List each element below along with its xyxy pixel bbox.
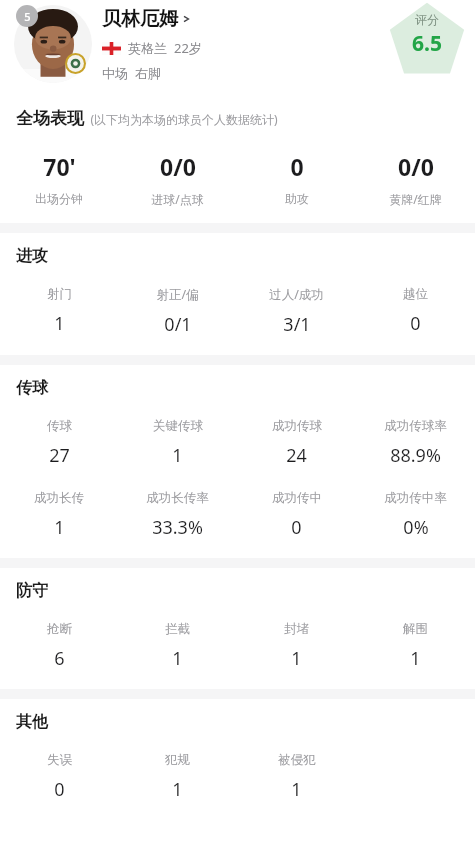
staticText: 0% bbox=[403, 515, 429, 540]
staticText: 6 bbox=[54, 646, 65, 671]
button[interactable]: 评分 6.5 bbox=[395, 9, 459, 71]
button[interactable]: 失误 bbox=[0, 752, 118, 802]
staticText: 22岁 bbox=[174, 39, 202, 57]
staticText: 0 bbox=[291, 515, 302, 540]
staticText: 24 bbox=[286, 443, 307, 468]
staticText: 防守 bbox=[16, 581, 48, 601]
button[interactable]: 射正/偏 bbox=[118, 286, 237, 337]
staticText: 1 bbox=[410, 646, 421, 671]
staticText: 3/1 bbox=[283, 312, 311, 337]
staticText: 进攻 bbox=[16, 246, 48, 266]
staticText: 33.3% bbox=[152, 515, 203, 540]
staticText: 5 bbox=[24, 9, 31, 24]
staticText: 英格兰 bbox=[128, 40, 167, 56]
staticText: 成功传中 bbox=[272, 490, 322, 506]
staticText: 0/0 bbox=[398, 151, 434, 182]
staticText: 其他 bbox=[16, 712, 48, 732]
button[interactable]: 封堵 bbox=[237, 621, 356, 671]
staticText: 成功传球 bbox=[272, 418, 322, 434]
staticText: 被侵犯 bbox=[278, 752, 316, 768]
button[interactable]: 成功长传率 bbox=[118, 490, 237, 540]
staticText: 出场分钟 bbox=[35, 191, 83, 206]
staticText: 全场表现 bbox=[16, 108, 84, 129]
button[interactable]: 0 bbox=[237, 151, 356, 206]
staticText: 0 bbox=[410, 311, 421, 336]
staticText: 进球/点球 bbox=[151, 191, 204, 207]
staticText: 犯规 bbox=[165, 752, 190, 768]
staticText: 1 bbox=[291, 646, 302, 671]
staticText: 70' bbox=[43, 151, 76, 182]
button[interactable]: 越位 bbox=[356, 286, 475, 336]
staticText: 0/1 bbox=[164, 312, 192, 337]
staticText: 1 bbox=[172, 777, 183, 802]
button[interactable]: 传球 bbox=[0, 418, 118, 468]
button[interactable]: 关键传球 bbox=[118, 418, 237, 468]
staticText: 射正/偏 bbox=[156, 286, 199, 303]
staticText: 1 bbox=[54, 515, 65, 540]
staticText: 成功传球率 bbox=[384, 418, 447, 434]
button[interactable]: 70' bbox=[0, 151, 118, 206]
staticText: 0 bbox=[54, 777, 65, 802]
staticText: 关键传球 bbox=[153, 418, 203, 434]
staticText: 中场 bbox=[102, 65, 128, 81]
staticText: 88.9% bbox=[390, 443, 441, 468]
staticText: 27 bbox=[49, 443, 70, 468]
staticText: 过人/成功 bbox=[269, 286, 324, 303]
staticText: 助攻 bbox=[285, 191, 309, 206]
button[interactable]: 成功长传 bbox=[0, 490, 118, 540]
button[interactable]: 5 bbox=[14, 0, 475, 83]
button[interactable]: 抢断 bbox=[0, 621, 118, 671]
button[interactable]: 解围 bbox=[356, 621, 475, 671]
staticText: 解围 bbox=[403, 621, 428, 637]
staticText: 封堵 bbox=[284, 621, 309, 637]
staticText: 越位 bbox=[403, 286, 428, 302]
button[interactable]: 射门 bbox=[0, 286, 118, 336]
button[interactable]: 0/0 bbox=[356, 151, 475, 207]
staticText: 成功长传率 bbox=[146, 490, 209, 506]
staticText: 1 bbox=[172, 443, 183, 468]
staticText: (以下均为本场的球员个人数据统计) bbox=[90, 111, 278, 127]
button[interactable]: 成功传中 bbox=[237, 490, 356, 540]
staticText: 贝林厄姆 bbox=[102, 7, 178, 31]
staticText: 成功长传 bbox=[34, 490, 84, 506]
staticText: 评分 bbox=[415, 12, 439, 27]
button[interactable]: 成功传球 bbox=[237, 418, 356, 468]
staticText: 失误 bbox=[47, 752, 72, 768]
staticText: 黄牌/红牌 bbox=[389, 191, 442, 207]
button[interactable]: 过人/成功 bbox=[237, 286, 356, 337]
staticText: 1 bbox=[54, 311, 65, 336]
button[interactable]: 0/0 bbox=[118, 151, 237, 207]
staticText: 抢断 bbox=[47, 621, 72, 637]
button[interactable]: 成功传球率 bbox=[356, 418, 475, 468]
staticText: 传球 bbox=[47, 418, 72, 434]
button[interactable]: 犯规 bbox=[118, 752, 237, 802]
staticText: 6.5 bbox=[412, 29, 442, 58]
staticText: 1 bbox=[172, 646, 183, 671]
button[interactable]: 成功传中率 bbox=[356, 490, 475, 540]
staticText: 射门 bbox=[47, 286, 72, 302]
staticText: 成功传中率 bbox=[384, 490, 447, 506]
button[interactable]: 被侵犯 bbox=[237, 752, 356, 802]
staticText: 右脚 bbox=[135, 65, 161, 81]
staticText: 拦截 bbox=[165, 621, 190, 637]
staticText: 传球 bbox=[16, 378, 48, 398]
button[interactable]: 拦截 bbox=[118, 621, 237, 671]
staticText: 0/0 bbox=[160, 151, 196, 182]
staticText: 0 bbox=[290, 151, 304, 182]
staticText: 1 bbox=[291, 777, 302, 802]
